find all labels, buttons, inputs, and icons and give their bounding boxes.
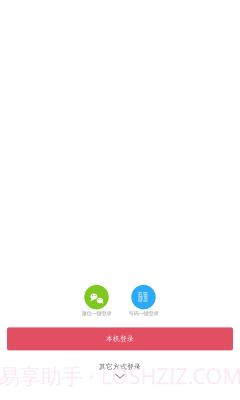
button[interactable]: 其它方式登录 <box>85 362 155 379</box>
staticText: 其它方式登录 <box>99 363 141 371</box>
button[interactable]: 号码一键登录 <box>123 285 163 317</box>
staticText: 微信一键登录 <box>81 310 111 317</box>
staticText: 易享助手 · LOSHZIZ.COM <box>0 362 240 390</box>
button[interactable]: 微信一键登录 <box>76 285 116 317</box>
button[interactable]: 本机登录 <box>7 327 233 350</box>
staticText: 号码一键登录 <box>128 310 158 317</box>
staticText: 本机登录 <box>106 335 134 343</box>
